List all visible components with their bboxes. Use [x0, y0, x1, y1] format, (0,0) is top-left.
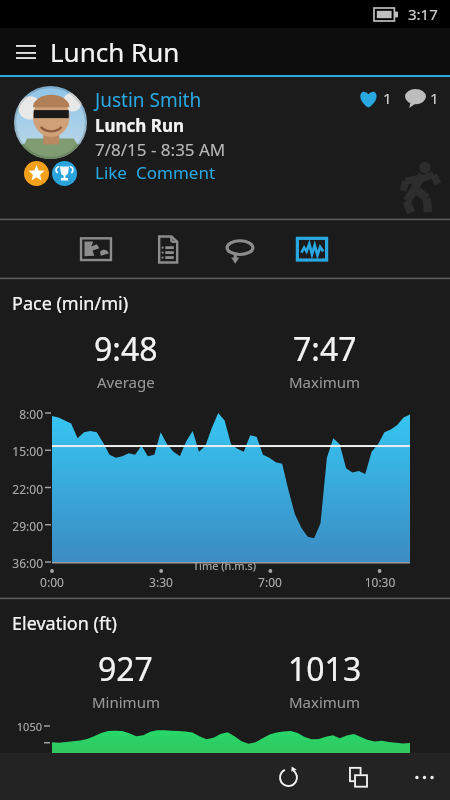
staticText: Minimum	[92, 692, 160, 712]
button[interactable]: Laps	[217, 226, 263, 272]
staticText: 9:48	[94, 327, 158, 371]
staticText: 10:30	[360, 574, 400, 590]
staticText: Maximum	[289, 692, 361, 712]
staticText: 1050	[0, 719, 42, 734]
staticText: Average	[97, 372, 155, 392]
staticText: 927	[98, 647, 153, 691]
staticText: 0:00	[32, 574, 72, 590]
button[interactable]: Share	[336, 755, 380, 799]
button[interactable]: 1 like	[358, 88, 392, 108]
button[interactable]: Map route	[73, 226, 119, 272]
button[interactable]: Achievement star	[24, 161, 49, 186]
button[interactable]: Splits	[145, 226, 191, 272]
button[interactable]: Trophy	[52, 161, 77, 186]
staticText: Time (h.m.s)	[193, 558, 257, 573]
staticText: 7:47	[293, 327, 357, 371]
button[interactable]: Graphs	[289, 226, 335, 272]
button[interactable]: Justin Smith	[95, 87, 202, 113]
staticText: 7/8/15 - 8:35 AM	[95, 138, 226, 161]
staticText: 8:00	[0, 406, 43, 422]
button[interactable]: 1 comment	[405, 88, 439, 108]
staticText: 15:00	[0, 443, 43, 459]
button[interactable]: Menu	[7, 33, 45, 71]
staticText: 1	[430, 88, 439, 108]
button[interactable]: More options	[402, 755, 446, 799]
staticText: 22:00	[0, 481, 43, 497]
button[interactable]: Like	[95, 161, 127, 184]
staticText: Pace (min/mi)	[12, 291, 129, 316]
staticText: Lunch Run	[95, 114, 185, 137]
button[interactable]: Profile photo of Justin Smith	[14, 86, 87, 159]
staticText: Lunch Run	[50, 34, 180, 69]
staticText: 1	[383, 88, 392, 108]
staticText: 36:00	[0, 555, 43, 571]
staticText: 29:00	[0, 518, 43, 534]
staticText: Elevation (ft)	[12, 611, 118, 636]
button[interactable]: Refresh	[266, 755, 310, 799]
button[interactable]: Comment	[136, 161, 216, 184]
staticText: 1013	[288, 647, 362, 691]
staticText: 3:17	[408, 4, 438, 24]
staticText: 7:00	[250, 574, 290, 590]
staticText: 1000	[0, 750, 42, 765]
staticText: Maximum	[289, 372, 361, 392]
staticText: 3:30	[141, 574, 181, 590]
